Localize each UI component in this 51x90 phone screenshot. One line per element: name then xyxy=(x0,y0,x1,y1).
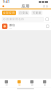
staticText: 已安装 xyxy=(19,11,28,14)
button[interactable]: 已安装 xyxy=(18,11,29,15)
staticText: 9:41 xyxy=(3,0,10,4)
button[interactable]: 微信 xyxy=(0,22,51,30)
button[interactable]: Back xyxy=(2,5,5,8)
staticText: 应用 xyxy=(18,84,20,86)
staticText: 应用 xyxy=(21,4,29,9)
staticText: 全部应用 xyxy=(3,11,15,14)
button[interactable]: Filter xyxy=(45,17,49,21)
button[interactable]: 发现 xyxy=(25,78,38,87)
staticText: 微信 xyxy=(9,23,15,27)
staticText: 我的 xyxy=(44,84,46,86)
button[interactable]: 应用 xyxy=(13,78,26,87)
button[interactable]: 搜索应用名称 xyxy=(2,17,44,21)
staticText: 更多 xyxy=(43,5,49,8)
button[interactable]: 可更新 xyxy=(31,11,42,15)
staticText: 搜索应用名称 xyxy=(6,18,24,21)
staticText: 8.0.4 xyxy=(9,27,12,29)
button[interactable]: 全部应用 xyxy=(2,11,16,15)
staticText: 可更新 xyxy=(32,11,41,14)
button[interactable]: More xyxy=(42,4,49,8)
staticText: 首页 xyxy=(5,84,7,86)
button[interactable]: 我的 xyxy=(38,78,51,87)
button[interactable]: 首页 xyxy=(0,78,13,87)
